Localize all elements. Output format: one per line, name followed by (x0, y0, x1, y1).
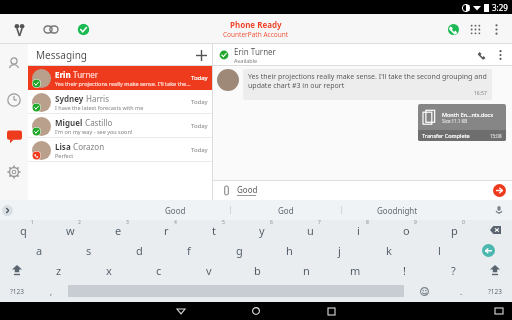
button[interactable]: Available (72, 18, 94, 40)
button[interactable]: r (142, 220, 190, 240)
button[interactable]: Attach file (218, 182, 234, 198)
button[interactable]: u (286, 220, 334, 240)
button[interactable]: Lisa (28, 138, 212, 162)
button[interactable]: e (94, 220, 142, 240)
button[interactable]: v (184, 260, 233, 280)
staticText: I have the latest forecasts with me (55, 104, 144, 111)
staticText: p (451, 223, 458, 238)
button[interactable]: Presence (8, 18, 30, 40)
button[interactable]: m (331, 260, 380, 280)
staticText: g (236, 243, 243, 258)
button[interactable]: Emoji (404, 280, 444, 302)
button[interactable]: b (233, 260, 282, 280)
button[interactable]: Recents (322, 302, 340, 320)
button[interactable]: Shift (0, 260, 34, 280)
staticText: Harris (84, 93, 109, 104)
staticText: 3:29 (492, 2, 508, 13)
staticText: x (106, 263, 112, 278)
button[interactable]: More options (486, 19, 506, 39)
staticText: 4 (174, 219, 177, 226)
button[interactable]: Goodnight (342, 200, 452, 220)
button[interactable]: h (264, 240, 314, 260)
button[interactable]: Sydney (28, 90, 212, 114)
button[interactable]: Hide keyboard (492, 304, 506, 318)
button[interactable]: Link (40, 18, 62, 40)
staticText: Miguel (55, 117, 83, 128)
button[interactable]: k (364, 240, 414, 260)
staticText: Today (191, 122, 208, 130)
staticText: 15:08 (490, 133, 502, 139)
button[interactable]: Back (172, 302, 190, 320)
staticText: r (164, 223, 169, 238)
button[interactable]: w (47, 220, 94, 240)
staticText: Today (191, 146, 208, 154)
button[interactable]: Miguel (28, 114, 212, 138)
button[interactable]: Backspace (478, 220, 512, 240)
staticText: e (115, 223, 122, 238)
button[interactable]: More options (492, 47, 508, 63)
button[interactable]: Call Erin (472, 45, 492, 65)
button[interactable]: , (34, 280, 68, 302)
button[interactable]: y (238, 220, 286, 240)
staticText: u (307, 223, 314, 238)
button[interactable]: Voice input (492, 203, 506, 217)
button[interactable]: Contacts (0, 50, 28, 78)
button[interactable]: Dialpad (464, 18, 486, 40)
button[interactable]: Shift (478, 260, 512, 280)
button[interactable]: New message (190, 44, 212, 66)
button[interactable]: q (0, 220, 47, 240)
button[interactable]: Enter (464, 240, 512, 260)
button[interactable]: g (214, 240, 264, 260)
button[interactable]: l (414, 240, 464, 260)
staticText: Phone Ready (230, 19, 282, 30)
button[interactable]: Home (247, 302, 265, 320)
button[interactable]: z (34, 260, 84, 280)
button[interactable]: i (334, 220, 382, 240)
staticText: 5 (222, 219, 225, 226)
staticText: h (286, 243, 293, 258)
button[interactable]: x (84, 260, 134, 280)
button[interactable]: p (430, 220, 478, 240)
button[interactable]: j (314, 240, 364, 260)
button[interactable]: f (164, 240, 214, 260)
staticText: Goodnight (377, 205, 418, 216)
button[interactable]: t (190, 220, 238, 240)
button[interactable]: o (382, 220, 430, 240)
staticText: y (259, 223, 265, 238)
staticText: q (20, 223, 27, 238)
button[interactable]: ?123 (0, 280, 34, 302)
button[interactable]: c (134, 260, 184, 280)
button[interactable]: Erin (28, 66, 212, 90)
staticText: 2 (78, 219, 81, 226)
button[interactable]: ? (429, 260, 478, 280)
staticText: 9 (414, 219, 417, 226)
button[interactable]: Good (120, 200, 230, 220)
staticText: Good (165, 205, 186, 216)
staticText: Castillo (83, 117, 113, 128)
staticText: m (350, 263, 361, 278)
button[interactable]: ?123 (478, 280, 512, 302)
button[interactable]: a (14, 240, 64, 260)
staticText: CounterPath Account (223, 30, 289, 39)
button[interactable]: History (0, 86, 28, 114)
button[interactable]: Expand (2, 205, 13, 216)
button[interactable]: Settings (0, 158, 28, 186)
button[interactable]: Messages (0, 122, 28, 150)
button[interactable]: s (64, 240, 114, 260)
staticText: Good (237, 184, 258, 195)
button[interactable]: Call (442, 18, 464, 40)
staticText: Available (234, 57, 258, 64)
staticText: . (460, 286, 463, 297)
button[interactable]: Send (493, 184, 506, 197)
button[interactable]: d (114, 240, 164, 260)
staticText: 16:57 (474, 90, 487, 97)
button[interactable]: ! (380, 260, 429, 280)
staticText: ! (403, 263, 406, 278)
staticText: ? (451, 263, 456, 278)
button[interactable]: n (282, 260, 331, 280)
button[interactable]: God (231, 200, 341, 220)
staticText: Today (191, 74, 208, 82)
staticText: l (438, 243, 441, 258)
